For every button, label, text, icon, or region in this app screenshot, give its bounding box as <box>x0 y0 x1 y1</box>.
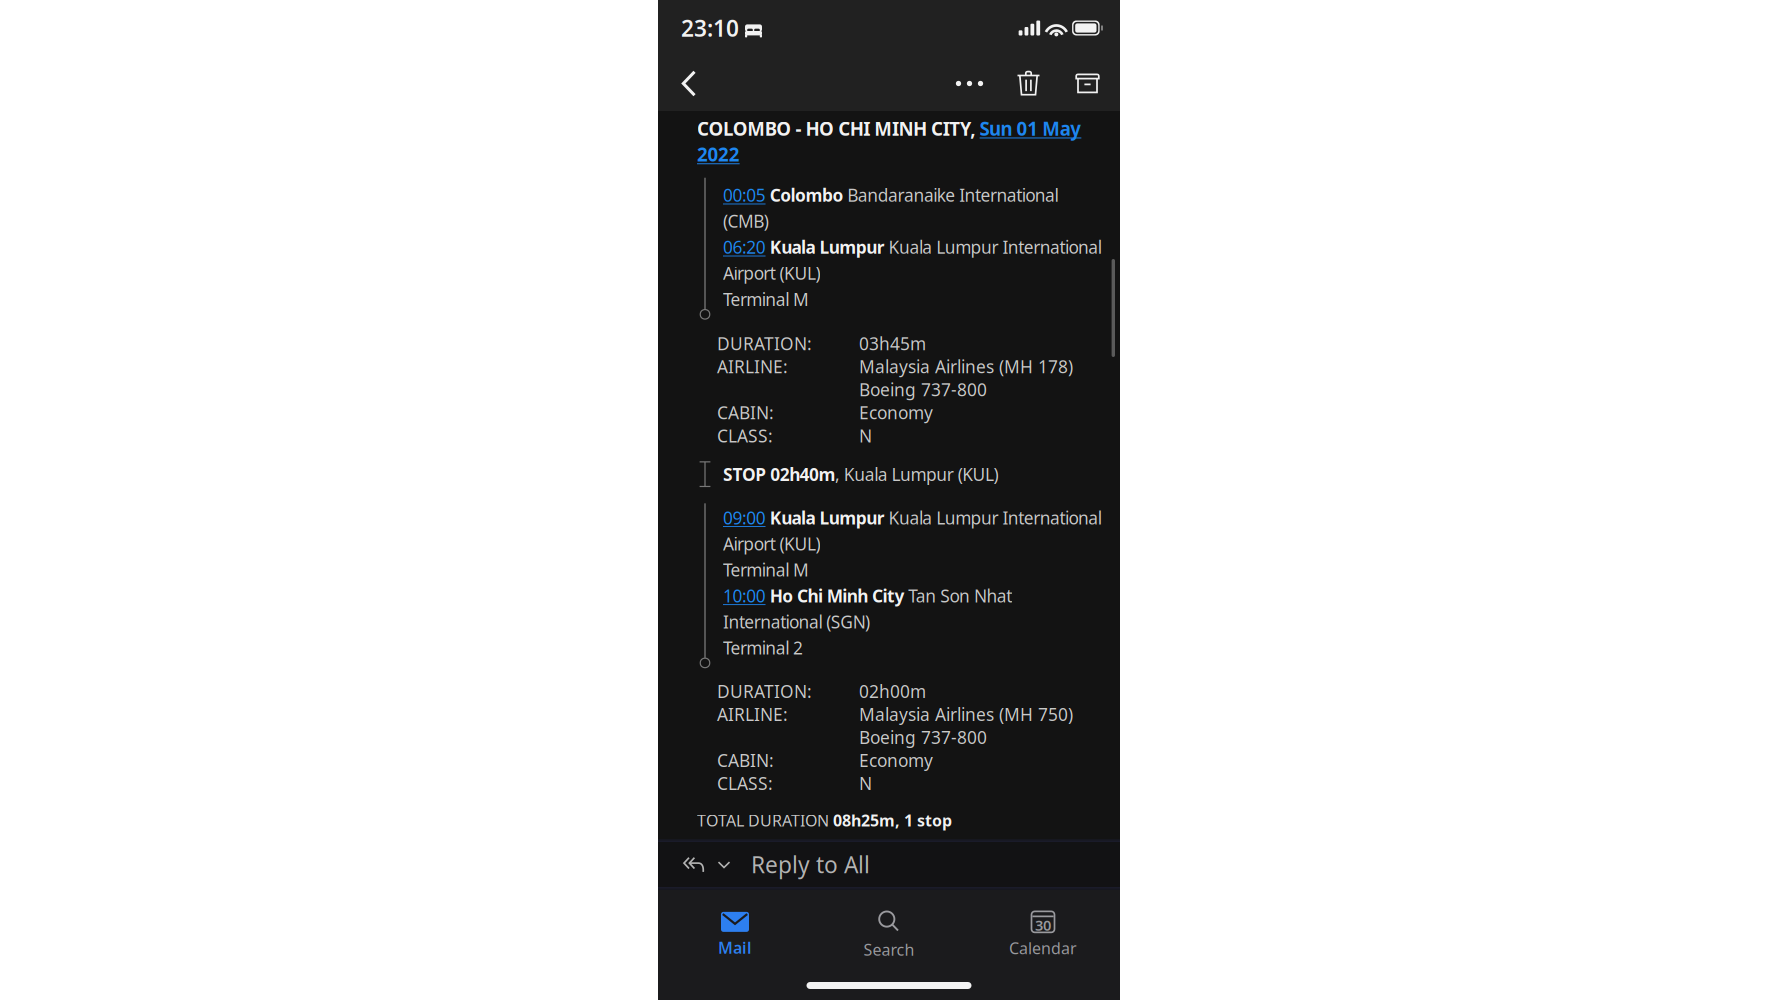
staticText: TOTAL DURATION 08h25m, 1 stop <box>697 810 952 831</box>
button[interactable]: Mail <box>658 903 812 967</box>
button[interactable]: More <box>940 57 999 109</box>
staticText: Mail <box>718 937 752 958</box>
button[interactable]: Back <box>665 57 713 109</box>
staticText: STOP 02h40m, Kuala Lumpur (KUL) <box>723 463 998 486</box>
button[interactable]: Archive <box>1058 57 1117 109</box>
staticText: Search <box>863 939 914 960</box>
staticText: Reply to All <box>751 849 870 879</box>
staticText: 02h00m Malaysia Airlines (MH 750) Boeing… <box>859 680 1073 795</box>
staticText: DURATION: AIRLINE: CABIN: CLASS: <box>717 680 812 795</box>
staticText: 23:10 <box>681 13 739 43</box>
button[interactable]: Search <box>812 903 966 967</box>
button[interactable]: Reply to All <box>658 839 1120 890</box>
staticText: 30 <box>1035 915 1051 935</box>
staticText: DURATION: AIRLINE: CABIN: CLASS: <box>717 332 812 447</box>
staticText: 03h45m Malaysia Airlines (MH 178) Boeing… <box>859 332 1073 447</box>
button[interactable]: 30 <box>966 903 1120 967</box>
staticText: COLOMBO - HO CHI MINH CITY, Sun 01 May 2… <box>697 116 1081 167</box>
button[interactable]: Delete <box>999 57 1058 109</box>
staticText: 09:00 Kuala Lumpur Kuala Lumpur Internat… <box>723 506 1102 659</box>
staticText: 00:05 Colombo Bandaranaike International… <box>723 184 1102 311</box>
staticText: Calendar <box>1009 937 1077 959</box>
